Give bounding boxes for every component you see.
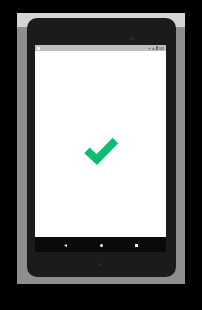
button[interactable]: Home [95, 239, 107, 251]
staticText: Android Emulator - Nexus_7_API_29:5554 [58, 17, 145, 23]
button[interactable]: Back [59, 239, 71, 251]
button[interactable]: Recent apps [130, 239, 142, 251]
button[interactable]: Success check [85, 138, 117, 164]
